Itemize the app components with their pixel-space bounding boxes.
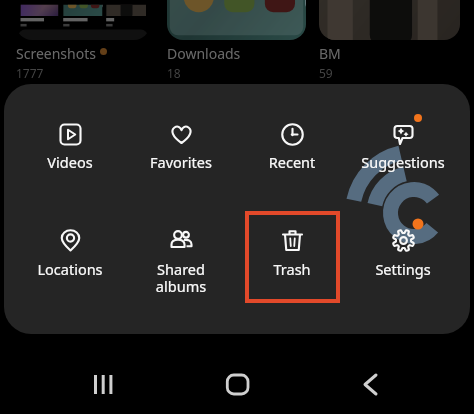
button[interactable]: Suggestions bbox=[350, 112, 456, 188]
button[interactable]: Shared albums bbox=[128, 218, 234, 294]
button[interactable]: Locations bbox=[17, 218, 123, 294]
staticText: 18 bbox=[167, 65, 181, 81]
staticText: Locations bbox=[17, 259, 123, 279]
button[interactable]: Recent bbox=[239, 112, 345, 188]
button[interactable]: Home bbox=[214, 365, 262, 413]
staticText: Downloads bbox=[167, 44, 241, 63]
staticText: Videos bbox=[17, 152, 123, 172]
staticText: BM bbox=[319, 44, 341, 63]
button[interactable]: Videos bbox=[17, 112, 123, 188]
button[interactable]: Favorites bbox=[128, 112, 234, 188]
staticText: Screenshots bbox=[16, 44, 96, 63]
button[interactable]: Settings bbox=[350, 218, 456, 294]
staticText: 1777 bbox=[16, 65, 44, 81]
staticText: Settings bbox=[350, 259, 456, 279]
button[interactable]: Recents bbox=[81, 365, 129, 413]
staticText: Trash bbox=[239, 259, 345, 279]
staticText: 59 bbox=[319, 65, 333, 81]
button[interactable]: Back bbox=[346, 365, 394, 413]
button[interactable]: Trash bbox=[239, 218, 345, 294]
staticText: Shared albums bbox=[128, 259, 234, 296]
staticText: Recent bbox=[239, 152, 345, 172]
staticText: Favorites bbox=[128, 152, 234, 172]
staticText: Suggestions bbox=[350, 152, 456, 172]
